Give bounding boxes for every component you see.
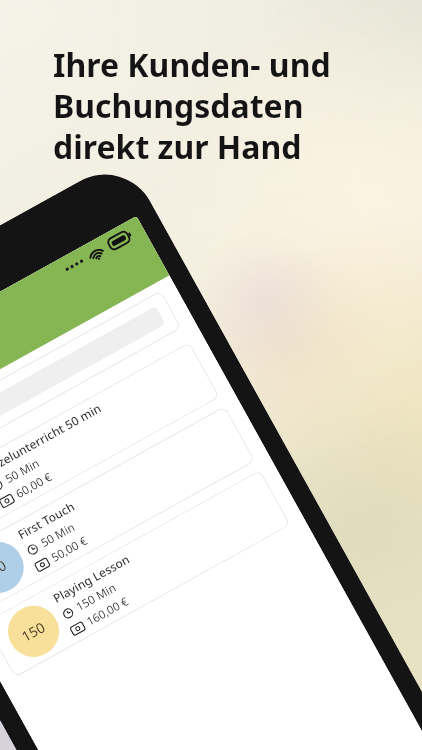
staticText: 50 — [0, 555, 10, 580]
staticText: 150 Min — [73, 579, 119, 615]
button[interactable]: 150 — [0, 470, 291, 678]
staticText: 50,00 € — [48, 533, 90, 566]
staticText: Ihre Kunden- und Buchungsdaten direkt zu… — [53, 43, 331, 169]
button[interactable] — [0, 290, 182, 481]
button[interactable]: 50 — [0, 342, 220, 550]
staticText: 50 Min — [38, 519, 78, 551]
staticText: 160,00 € — [84, 593, 132, 630]
staticText: 50 Min — [2, 455, 42, 487]
staticText: 150 — [18, 617, 49, 646]
staticText: 60,00 € — [13, 469, 55, 502]
button[interactable]: 50 — [0, 406, 255, 614]
staticText: Playing Lesson — [50, 551, 132, 606]
staticText: Einzelunterricht 50 min — [0, 399, 104, 478]
staticText: First Touch — [15, 498, 77, 542]
